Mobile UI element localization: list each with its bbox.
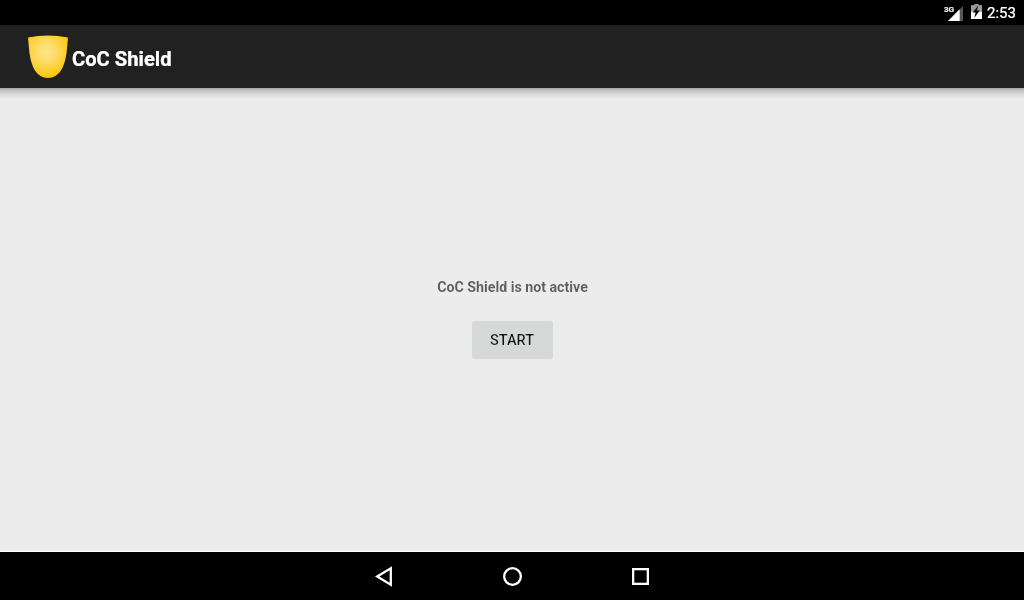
button[interactable]: CoC Shield bbox=[28, 25, 172, 88]
button[interactable]: Home bbox=[448, 552, 576, 600]
staticText: 2:53 bbox=[987, 4, 1016, 22]
staticText: START bbox=[490, 332, 535, 349]
staticText: CoC Shield is not active bbox=[437, 279, 588, 296]
staticText: CoC Shield bbox=[72, 47, 172, 71]
button[interactable]: START bbox=[472, 321, 553, 359]
staticText: 3G bbox=[944, 5, 955, 14]
button[interactable]: Recent apps bbox=[576, 552, 704, 600]
button[interactable]: Back bbox=[320, 552, 448, 600]
